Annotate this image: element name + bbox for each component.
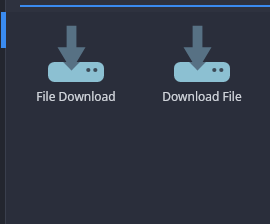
button[interactable]: Download File: [158, 24, 246, 104]
button[interactable]: File Download: [32, 24, 120, 104]
staticText: File Download: [36, 88, 116, 104]
staticText: Download File: [162, 88, 242, 104]
other: File Download: [48, 24, 104, 82]
other: Download File: [174, 24, 230, 82]
